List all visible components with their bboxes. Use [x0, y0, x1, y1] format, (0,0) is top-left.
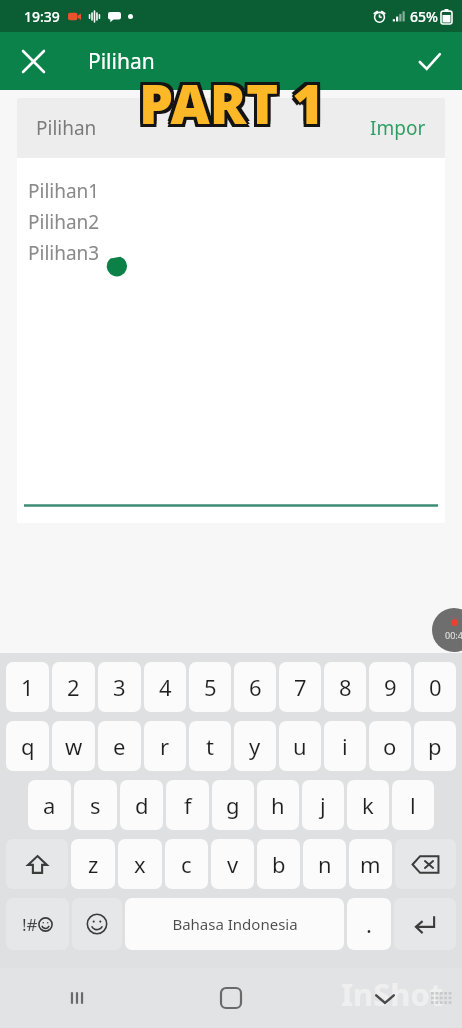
staticText: m: [360, 849, 381, 879]
button[interactable]: f: [166, 780, 209, 830]
staticText: 9: [384, 672, 397, 702]
staticText: PART 1: [136, 69, 321, 143]
button[interactable]: m: [349, 839, 392, 889]
button[interactable]: r: [144, 721, 186, 771]
staticText: Pilihan: [88, 47, 155, 76]
staticText: p: [428, 731, 442, 761]
button[interactable]: 3: [98, 662, 141, 712]
button[interactable]: 7: [279, 662, 321, 712]
staticText: Pilihan3: [28, 240, 100, 266]
staticText: PART 1: [136, 66, 321, 140]
staticText: 65%: [410, 7, 438, 26]
button[interactable]: Hide keyboard: [308, 968, 462, 1028]
staticText: 4: [159, 672, 172, 702]
staticText: 0: [429, 672, 442, 702]
staticText: z: [88, 849, 99, 879]
button[interactable]: y: [234, 721, 276, 771]
staticText: PART 1: [139, 63, 324, 137]
button[interactable]: v: [211, 839, 254, 889]
staticText: !#: [22, 913, 38, 936]
staticText: 8: [339, 672, 352, 702]
button[interactable]: a: [28, 780, 71, 830]
button[interactable]: z: [71, 839, 115, 889]
button[interactable]: x: [118, 839, 162, 889]
button[interactable]: Bahasa Indonesia: [125, 898, 344, 950]
button[interactable]: Backspace: [395, 839, 456, 889]
staticText: r: [160, 731, 170, 761]
staticText: PART 1: [142, 69, 327, 143]
button[interactable]: o: [369, 721, 411, 771]
staticText: 1: [21, 672, 34, 702]
staticText: PART 1: [142, 66, 327, 140]
staticText: 19:39: [24, 7, 60, 26]
button[interactable]: p: [414, 721, 456, 771]
button[interactable]: Close: [10, 38, 56, 84]
staticText: n: [318, 849, 332, 879]
staticText: u: [293, 731, 307, 761]
button[interactable]: 1: [6, 662, 49, 712]
button[interactable]: 4: [144, 662, 186, 712]
button[interactable]: t: [189, 721, 231, 771]
staticText: c: [181, 849, 192, 879]
button[interactable]: Confirm: [406, 38, 452, 84]
button[interactable]: Enter: [394, 898, 456, 950]
button[interactable]: 6: [234, 662, 276, 712]
button[interactable]: Recents: [0, 968, 154, 1028]
staticText: h: [271, 790, 285, 820]
staticText: 7: [294, 672, 307, 702]
staticText: PART 1: [136, 63, 321, 137]
button[interactable]: g: [212, 780, 254, 830]
staticText: w: [65, 731, 83, 761]
staticText: v: [227, 849, 239, 879]
button[interactable]: i: [324, 721, 366, 771]
staticText: a: [43, 790, 56, 820]
button[interactable]: Impor: [370, 115, 426, 141]
staticText: i: [342, 731, 348, 761]
staticText: PART 1: [142, 63, 327, 137]
staticText: x: [134, 849, 146, 879]
staticText: f: [184, 790, 192, 820]
staticText: Pilihan2: [28, 209, 100, 235]
staticText: PART 1: [139, 66, 324, 140]
staticText: k: [362, 790, 374, 820]
button[interactable]: 2: [52, 662, 95, 712]
staticText: Bahasa Indonesia: [172, 914, 298, 934]
button[interactable]: 5: [189, 662, 231, 712]
staticText: 00:4: [445, 629, 462, 641]
staticText: l: [410, 790, 416, 820]
staticText: q: [21, 731, 35, 761]
staticText: g: [226, 790, 240, 820]
button[interactable]: 9: [369, 662, 411, 712]
button[interactable]: 0: [414, 662, 456, 712]
staticText: 3: [113, 672, 126, 702]
button[interactable]: k: [347, 780, 389, 830]
staticText: b: [272, 849, 286, 879]
button[interactable]: c: [165, 839, 208, 889]
staticText: s: [90, 790, 101, 820]
button[interactable]: s: [74, 780, 117, 830]
staticText: d: [135, 790, 149, 820]
staticText: PART 1: [139, 69, 324, 143]
staticText: j: [320, 790, 326, 820]
button[interactable]: Emoji: [72, 898, 122, 950]
staticText: 2: [67, 672, 80, 702]
button[interactable]: Symbols: [6, 898, 69, 950]
button[interactable]: d: [120, 780, 163, 830]
button[interactable]: e: [98, 721, 141, 771]
button[interactable]: h: [257, 780, 299, 830]
button[interactable]: w: [52, 721, 95, 771]
staticText: 6: [249, 672, 262, 702]
button[interactable]: u: [279, 721, 321, 771]
button[interactable]: l: [392, 780, 434, 830]
button[interactable]: 8: [324, 662, 366, 712]
button[interactable]: Home: [154, 968, 308, 1028]
button[interactable]: n: [303, 839, 346, 889]
staticText: o: [383, 731, 397, 761]
button[interactable]: j: [302, 780, 344, 830]
button[interactable]: q: [6, 721, 49, 771]
button[interactable]: Shift: [6, 839, 68, 889]
button[interactable]: .: [347, 898, 391, 950]
button[interactable]: b: [257, 839, 300, 889]
staticText: Pilihan1: [28, 178, 100, 204]
staticText: y: [249, 731, 261, 761]
